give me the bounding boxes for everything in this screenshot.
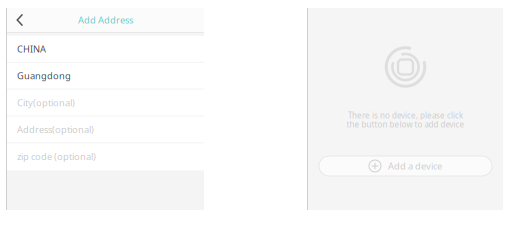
staticText: CHINA	[17, 43, 46, 55]
button[interactable]: zip code (optional)	[7, 143, 204, 170]
staticText: There is no device, please click	[348, 110, 463, 121]
staticText: Address(optional)	[17, 123, 94, 136]
button[interactable]: Back	[7, 8, 33, 32]
staticText: zip code (optional)	[17, 150, 96, 163]
staticText: Add Address	[78, 14, 133, 26]
button[interactable]: Address(optional)	[7, 116, 204, 143]
staticText: City(optional)	[17, 96, 75, 109]
button[interactable]: CHINA	[7, 36, 204, 63]
button[interactable]: City(optional)	[7, 89, 204, 116]
staticText: Guangdong	[17, 69, 71, 82]
staticText: Add a device	[388, 160, 442, 172]
button[interactable]: Guangdong	[7, 63, 204, 89]
staticText: the button below to add device	[346, 119, 464, 130]
button[interactable]: Add a device	[319, 156, 492, 176]
